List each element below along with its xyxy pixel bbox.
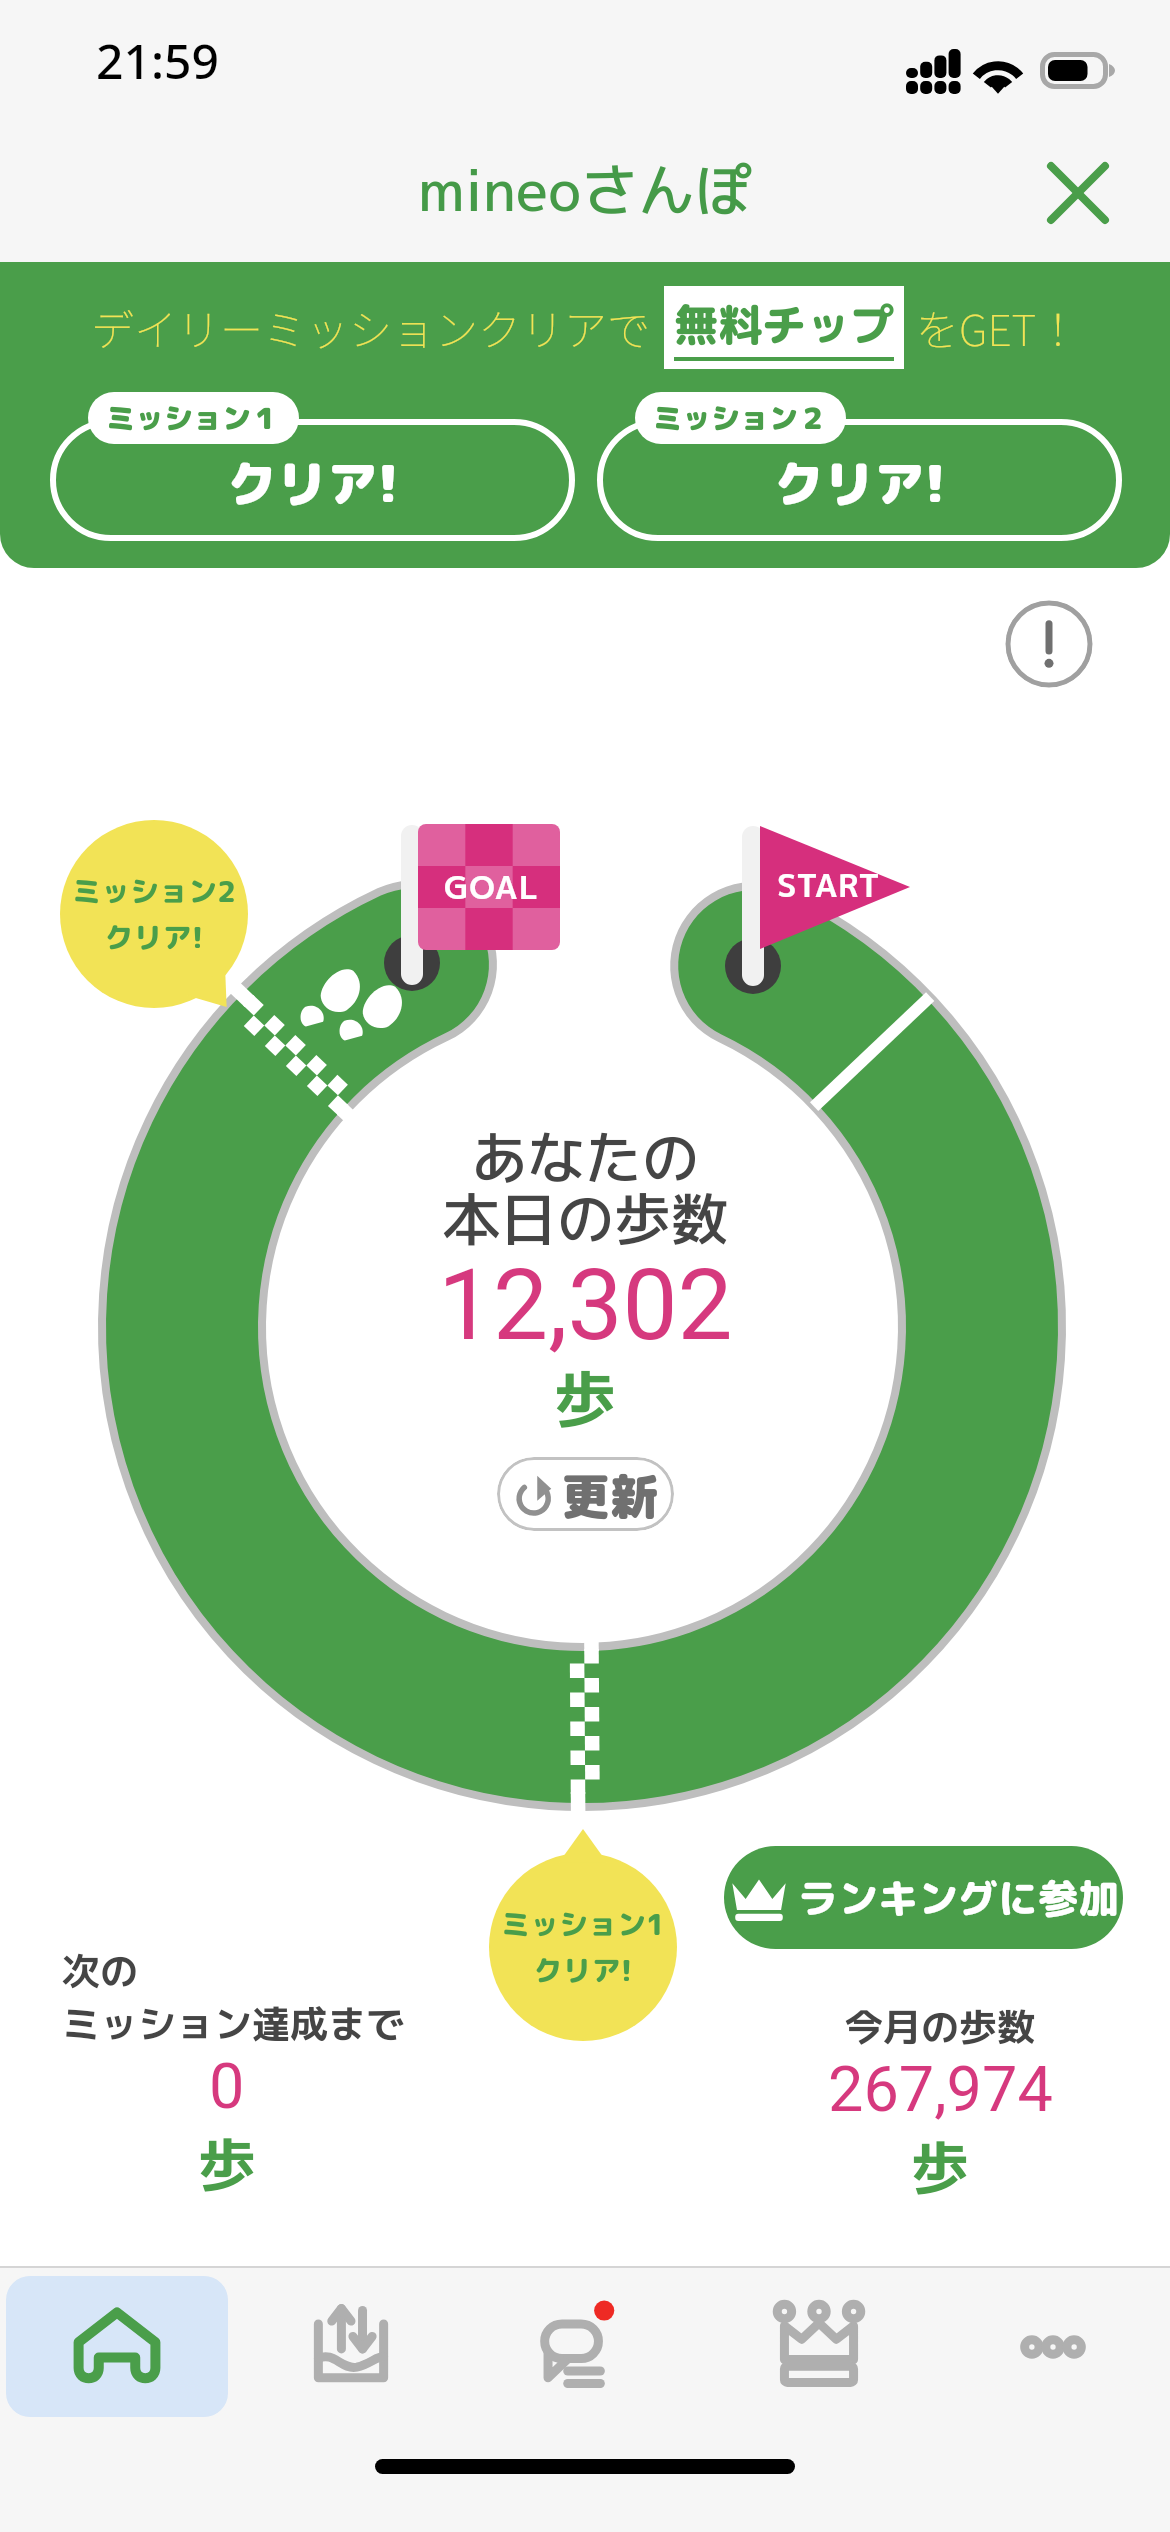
staticText: 12,302 xyxy=(438,1248,733,1363)
staticText: ミッション2 クリア! xyxy=(72,871,236,957)
staticText: 21:59 xyxy=(96,28,219,93)
button[interactable]: Data xyxy=(234,2268,468,2425)
staticText: ミッション１ xyxy=(106,398,281,438)
button[interactable]: Chat xyxy=(468,2268,702,2425)
staticText: 歩 xyxy=(198,2124,257,2205)
button[interactable]: Close xyxy=(1030,145,1126,241)
staticText: 0 xyxy=(209,2050,245,2124)
staticText: クリア! xyxy=(774,448,946,518)
staticText: 今月の歩数 xyxy=(845,2000,1036,2053)
staticText: デイリーミッションクリアで xyxy=(91,296,650,358)
staticText: 本日の歩数 xyxy=(443,1179,728,1259)
staticText: START xyxy=(777,863,881,908)
button[interactable]: Information xyxy=(1005,600,1093,688)
staticText: クリア! xyxy=(227,448,399,518)
staticText: 歩 xyxy=(554,1355,617,1441)
staticText: ミッション1 クリア! xyxy=(501,1904,665,1990)
staticText: ミッション達成まで xyxy=(62,1997,405,2050)
staticText: 無料チップ xyxy=(674,294,894,355)
button[interactable]: 無料チップ xyxy=(664,286,904,369)
staticText: ランキングに参加 xyxy=(798,1870,1118,1926)
staticText: 267,974 xyxy=(828,2053,1053,2127)
staticText: をGET！ xyxy=(916,296,1080,358)
button[interactable]: ランキングに参加 xyxy=(724,1846,1123,1949)
staticText: 次の xyxy=(62,1944,139,1997)
button[interactable]: Ranking xyxy=(702,2268,936,2425)
button[interactable]: クリア! xyxy=(50,392,575,541)
button[interactable]: 更新 xyxy=(497,1457,674,1531)
button[interactable]: Home xyxy=(0,2268,234,2425)
button[interactable]: クリア! xyxy=(597,392,1122,541)
staticText: mineoさんぽ xyxy=(418,150,753,230)
staticText: GOAL xyxy=(444,865,539,910)
button[interactable]: More xyxy=(936,2268,1170,2425)
staticText: あなたの xyxy=(471,1118,699,1198)
staticText: 歩 xyxy=(911,2127,970,2208)
staticText: 更新 xyxy=(562,1462,659,1529)
staticText: ミッション２ xyxy=(653,398,828,438)
